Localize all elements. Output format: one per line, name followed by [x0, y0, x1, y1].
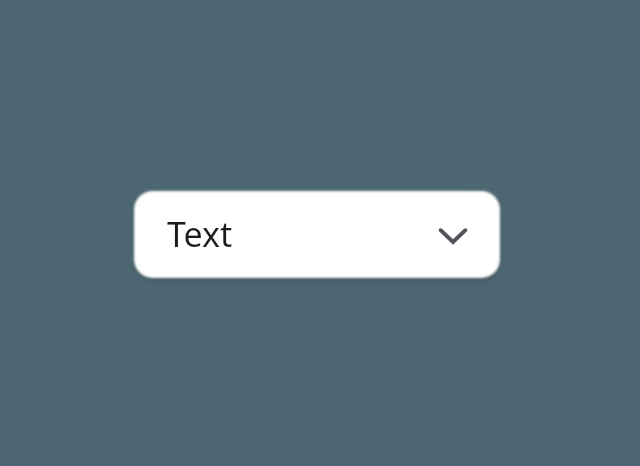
staticText: Text — [167, 211, 233, 257]
button[interactable]: Show dropdown options — [435, 216, 471, 252]
button[interactable]: Text — [134, 190, 500, 277]
